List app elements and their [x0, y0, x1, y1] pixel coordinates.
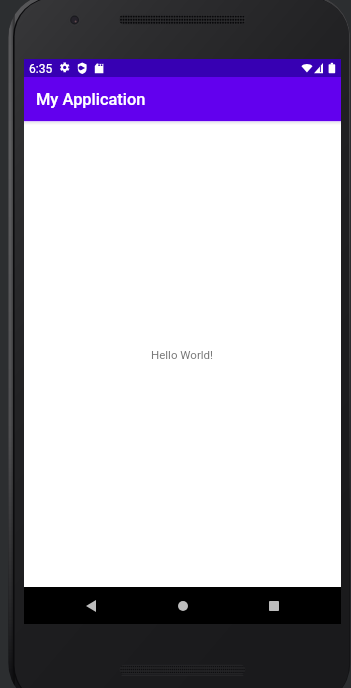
- button[interactable]: Back: [68, 587, 113, 624]
- staticText: 6:35: [29, 62, 53, 76]
- button[interactable]: Home: [160, 587, 205, 624]
- staticText: Hello World!: [151, 348, 214, 361]
- staticText: My Application: [36, 90, 146, 109]
- button[interactable]: Recent apps: [251, 587, 296, 624]
